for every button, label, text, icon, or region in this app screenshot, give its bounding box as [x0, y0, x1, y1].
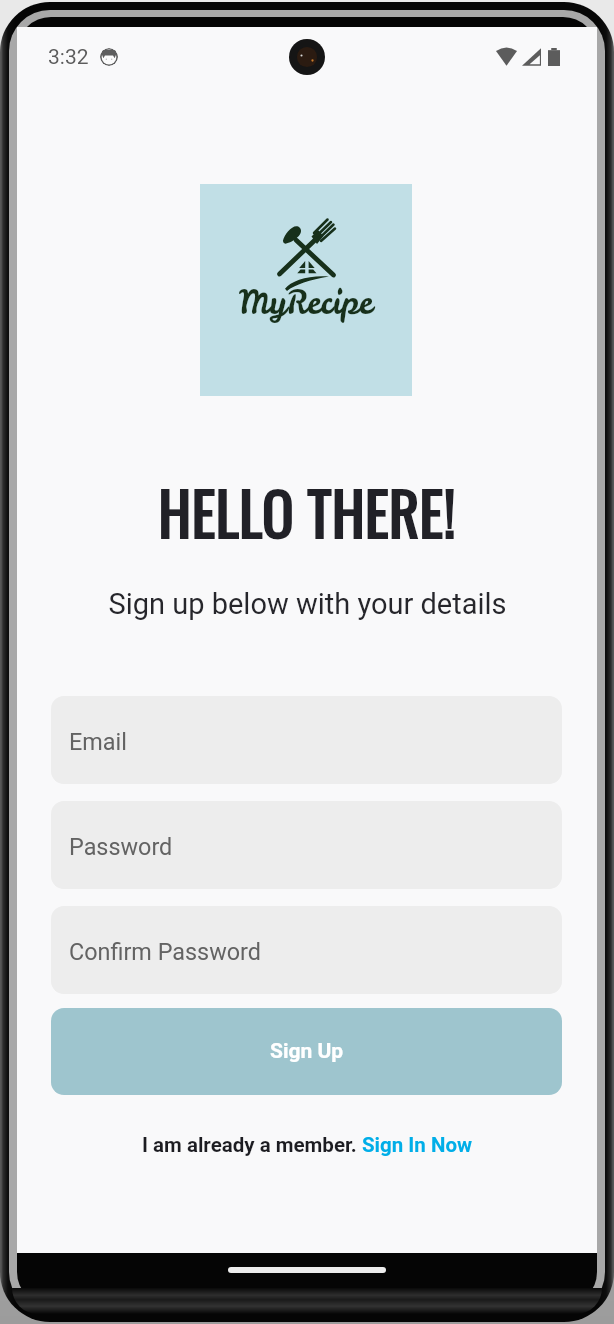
staticText: Email	[69, 728, 127, 755]
staticText: Sign Up	[270, 1039, 344, 1064]
staticText: Sign up below with your details	[108, 587, 507, 621]
button[interactable]: Confirm Password	[51, 906, 562, 994]
button[interactable]: Sign In Now	[362, 1133, 473, 1157]
staticText: Sign In Now	[362, 1133, 473, 1157]
staticText: MyRecipe	[239, 281, 373, 324]
button[interactable]: Password	[51, 801, 562, 889]
button[interactable]: Sign Up	[51, 1008, 562, 1095]
staticText: Password	[69, 833, 173, 860]
staticText: 3:32	[48, 45, 89, 70]
staticText: HELLO THERE!	[158, 468, 456, 555]
button[interactable]: Email	[51, 696, 562, 784]
staticText: I am already a member.	[142, 1133, 362, 1157]
staticText: Confirm Password	[69, 938, 262, 965]
